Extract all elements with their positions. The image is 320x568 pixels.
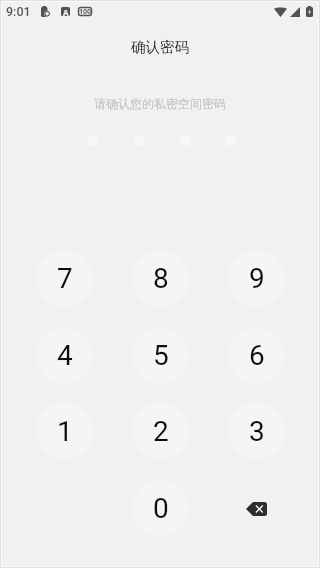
- button[interactable]: 3: [228, 403, 285, 460]
- button[interactable]: 0: [132, 480, 189, 537]
- staticText: 9: [249, 262, 265, 295]
- staticText: 5: [153, 339, 169, 372]
- button[interactable]: 6: [228, 327, 285, 384]
- button[interactable]: 9: [228, 250, 285, 307]
- staticText: 9:01: [6, 4, 31, 19]
- staticText: 2: [153, 415, 169, 448]
- staticText: A: [63, 7, 69, 16]
- button[interactable]: 4: [36, 327, 93, 384]
- button[interactable]: 7: [36, 250, 93, 307]
- staticText: 1: [57, 415, 73, 448]
- staticText: 3: [249, 415, 265, 448]
- staticText: 0: [153, 492, 169, 525]
- button[interactable]: 5: [132, 327, 189, 384]
- staticText: 8: [153, 262, 169, 295]
- button[interactable]: Delete: [228, 480, 285, 537]
- staticText: 7: [57, 262, 73, 295]
- button[interactable]: 8: [132, 250, 189, 307]
- button[interactable]: 1: [36, 403, 93, 460]
- staticText: 确认密码: [0, 38, 320, 56]
- button[interactable]: 2: [132, 403, 189, 460]
- staticText: 4: [57, 339, 73, 372]
- staticText: 请确认您的私密空间密码: [0, 96, 320, 111]
- staticText: 6: [249, 339, 265, 372]
- staticText: 100: [79, 7, 92, 16]
